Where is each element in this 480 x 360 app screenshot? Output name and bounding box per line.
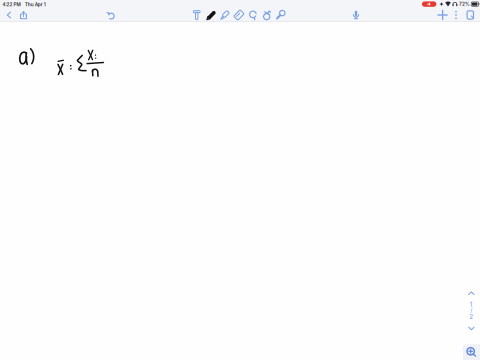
button[interactable]: Pages bbox=[464, 8, 477, 21]
button[interactable]: Add bbox=[436, 8, 449, 21]
staticText: 2 bbox=[469, 313, 473, 320]
button[interactable]: Back bbox=[2, 8, 15, 21]
button[interactable]: Text tool bbox=[190, 8, 203, 21]
button[interactable]: Undo bbox=[104, 8, 117, 21]
button[interactable]: Lasso tool bbox=[246, 8, 259, 21]
staticText: 1 bbox=[470, 301, 473, 308]
button[interactable]: Zoom bbox=[463, 344, 480, 360]
button[interactable]: Eraser tool bbox=[232, 8, 245, 21]
button[interactable]: Share bbox=[17, 8, 30, 21]
staticText: 72% bbox=[459, 1, 470, 7]
button[interactable]: More bbox=[449, 8, 462, 21]
staticText: Thu Apr 1 bbox=[25, 2, 46, 7]
button[interactable]: Previous page bbox=[465, 288, 478, 299]
button[interactable]: Ink tool bbox=[274, 8, 287, 21]
button[interactable]: Next page bbox=[465, 323, 478, 334]
button[interactable]: Shape tool bbox=[261, 8, 274, 21]
button[interactable]: Highlighter tool bbox=[218, 8, 231, 21]
button[interactable]: Record audio bbox=[349, 8, 362, 21]
staticText: 4:22 PM bbox=[3, 2, 21, 7]
staticText: / bbox=[470, 307, 472, 314]
button[interactable]: Pen tool bbox=[204, 8, 217, 21]
